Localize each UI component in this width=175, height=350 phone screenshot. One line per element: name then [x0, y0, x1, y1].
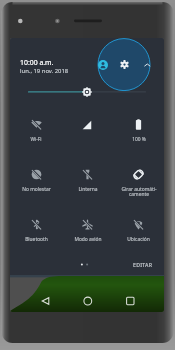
staticText: Bluetooth	[25, 236, 48, 243]
button[interactable]: Recent apps	[121, 291, 141, 311]
button[interactable]: Settings	[120, 60, 129, 69]
button[interactable]: Modo avión	[62, 212, 113, 246]
staticText: Girar automáti- camente	[121, 186, 157, 196]
button[interactable]: 100 %	[113, 112, 164, 146]
staticText: No molestar	[22, 186, 51, 193]
button[interactable]: Mobile data	[62, 112, 113, 146]
button[interactable]: Back	[36, 291, 56, 311]
staticText: EDITAR	[133, 261, 153, 268]
staticText: Wi-Fi	[30, 136, 42, 143]
button[interactable]: Ubicación	[113, 212, 164, 246]
button[interactable]: User profile	[98, 60, 108, 70]
button[interactable]: EDITAR	[131, 259, 155, 270]
button[interactable]: Bluetooth	[10, 212, 62, 246]
button[interactable]: Linterna	[62, 162, 113, 196]
staticText: Modo avión	[74, 236, 102, 243]
button[interactable]: No molestar	[10, 162, 62, 196]
staticText: 100 %	[132, 136, 146, 143]
button[interactable]: Home	[78, 291, 98, 311]
button[interactable]: Expand quick settings	[144, 62, 151, 69]
button[interactable]: Girar automáti- camente	[113, 162, 164, 196]
staticText: lun., 19 nov. 2018	[20, 67, 69, 75]
staticText: Linterna	[78, 186, 98, 193]
button[interactable]: Wi-Fi	[10, 112, 62, 146]
button[interactable]: Brightness	[10, 85, 164, 99]
staticText: 10:00 a.m.	[20, 58, 54, 67]
staticText: Ubicación	[127, 236, 150, 243]
